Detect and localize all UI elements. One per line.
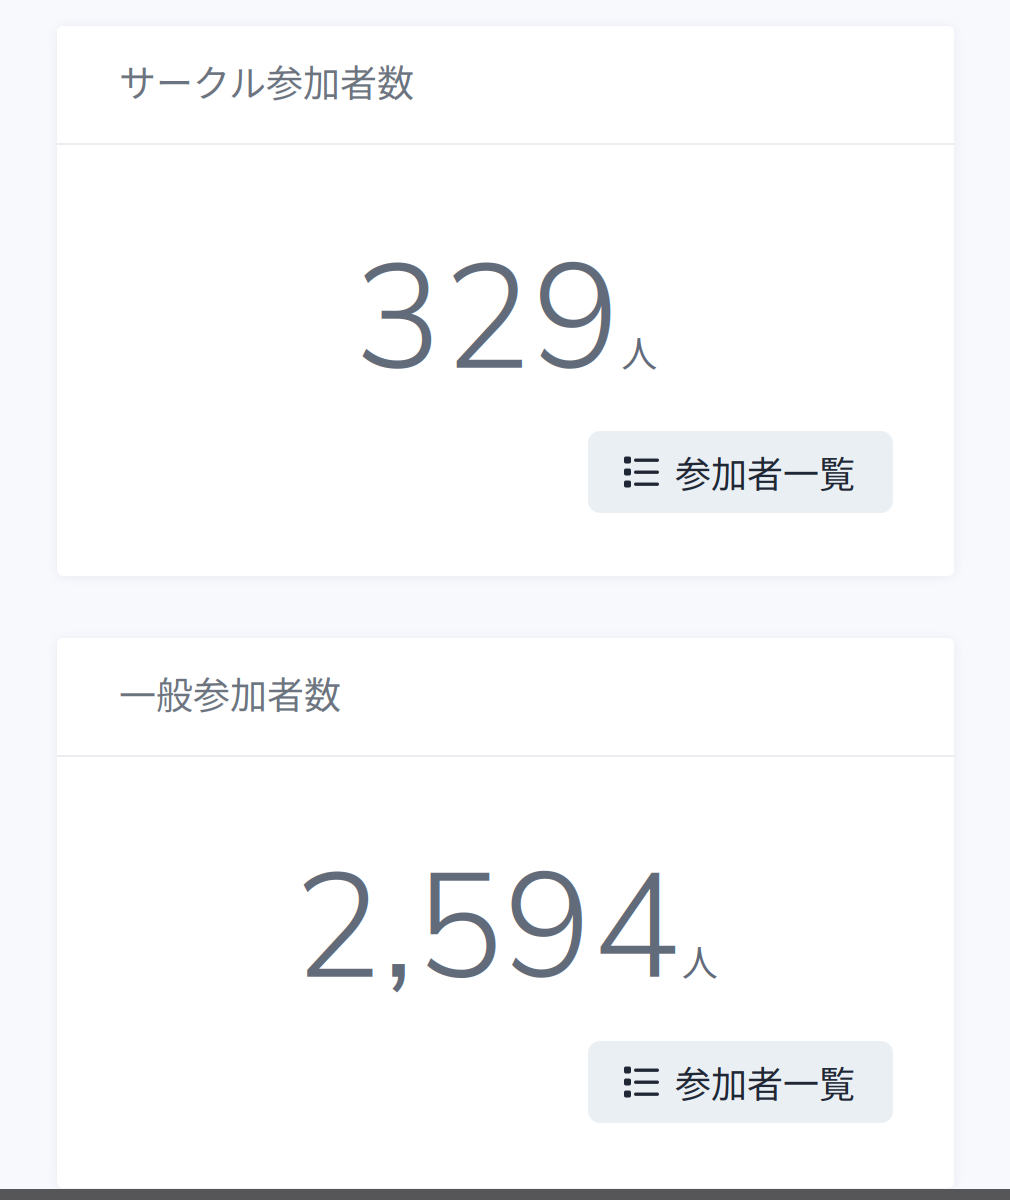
staticText: 2,594 <box>293 827 681 1029</box>
staticText: 一般参加者数 <box>119 666 341 720</box>
staticText: サークル参加者数 <box>119 54 414 108</box>
staticText: 人 <box>621 326 657 378</box>
staticText: 人 <box>682 935 718 987</box>
staticText: 参加者一覧 <box>675 446 855 498</box>
button[interactable]: 参加者一覧 <box>588 1041 893 1123</box>
staticText: 329 <box>354 218 621 420</box>
staticText: 参加者一覧 <box>675 1056 855 1108</box>
button[interactable]: 参加者一覧 <box>588 431 893 513</box>
